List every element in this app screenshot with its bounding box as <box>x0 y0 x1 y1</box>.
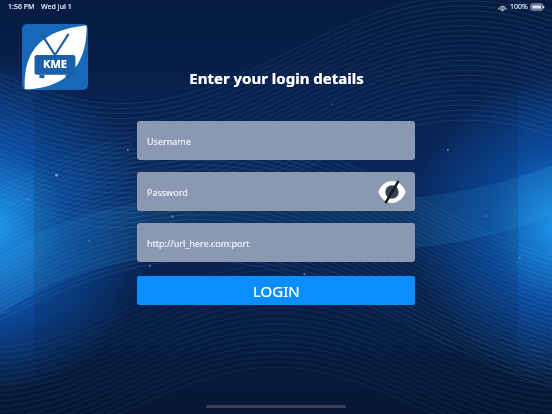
staticText: Password <box>147 186 188 198</box>
button[interactable]: Password <box>137 172 415 211</box>
button[interactable]: LOGIN <box>137 276 415 305</box>
staticText: Wed Jul 1 <box>41 2 72 12</box>
staticText: KME <box>43 56 67 71</box>
button[interactable]: http://url_here.com:port <box>137 223 415 262</box>
other: KME logo <box>22 24 88 90</box>
staticText: http://url_here.com:port <box>147 237 250 249</box>
staticText: 1:56 PM <box>8 2 35 12</box>
staticText: 100% <box>510 2 528 12</box>
staticText: Enter your login details <box>189 68 364 88</box>
button[interactable]: Show password <box>377 181 407 203</box>
staticText: Username <box>147 135 191 147</box>
staticText: LOGIN <box>253 281 300 301</box>
button[interactable]: Username <box>137 121 415 160</box>
